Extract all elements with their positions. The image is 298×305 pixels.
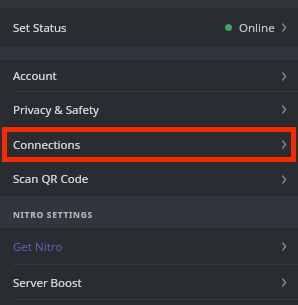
staticText: Scan QR Code [13, 171, 89, 187]
other: Scan QR Code [279, 173, 290, 186]
other: Get Nitro [279, 240, 290, 253]
other: Account [279, 70, 290, 83]
staticText: Connections [13, 137, 81, 153]
staticText: Account [13, 68, 57, 84]
staticText: Set Status [13, 20, 67, 36]
staticText: Privacy & Safety [13, 102, 99, 118]
staticText: Online [239, 20, 275, 36]
other: Privacy & Safety [279, 103, 290, 116]
staticText: Server Boost [13, 275, 82, 291]
staticText: Get Nitro [13, 239, 63, 255]
button[interactable]: Server Boost [0, 265, 298, 300]
button[interactable]: Privacy & Safety [0, 92, 298, 127]
staticText: NITRO SETTINGS [13, 209, 93, 221]
button[interactable]: Set Status [0, 8, 298, 47]
button[interactable]: Get Nitro [0, 228, 298, 265]
other: Server Boost [279, 276, 290, 289]
button[interactable]: Account [0, 60, 298, 92]
button[interactable]: Connections [0, 127, 298, 162]
button[interactable]: Scan QR Code [0, 162, 298, 196]
other: Connections [279, 138, 290, 151]
